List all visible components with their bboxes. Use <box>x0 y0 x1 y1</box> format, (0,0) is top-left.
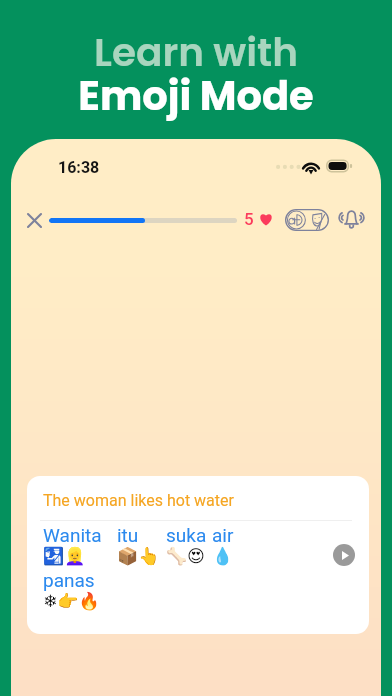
staticText: 🛂👱‍♀️ <box>43 546 86 566</box>
staticText: 💧 <box>212 546 234 566</box>
staticText: itu <box>117 524 139 546</box>
button[interactable]: air <box>212 524 234 566</box>
staticText: Wanita <box>43 524 102 546</box>
button[interactable]: panas <box>43 569 100 611</box>
staticText: suka <box>166 524 207 546</box>
staticText: 16:38 <box>58 158 100 177</box>
staticText: 📦👆 <box>117 546 160 566</box>
button[interactable]: Play audio <box>333 544 355 566</box>
button[interactable]: Wanita <box>43 524 102 566</box>
staticText: panas <box>43 569 95 591</box>
staticText: 🦴😍 <box>166 546 205 566</box>
button[interactable]: Sound on <box>336 207 366 231</box>
button[interactable]: Switch to emoji mode <box>285 209 329 231</box>
button[interactable]: Close <box>22 208 46 232</box>
staticText: ❄️👉🔥 <box>43 591 100 611</box>
staticText: 5 <box>244 209 254 229</box>
button[interactable]: suka <box>166 524 207 566</box>
button[interactable]: The woman likes hot water <box>27 476 369 634</box>
staticText: The woman likes hot water <box>43 491 234 510</box>
staticText: air <box>212 524 234 546</box>
button[interactable]: itu <box>117 524 160 566</box>
staticText: Emoji Mode <box>78 68 314 124</box>
staticText: Learn with <box>94 25 298 80</box>
